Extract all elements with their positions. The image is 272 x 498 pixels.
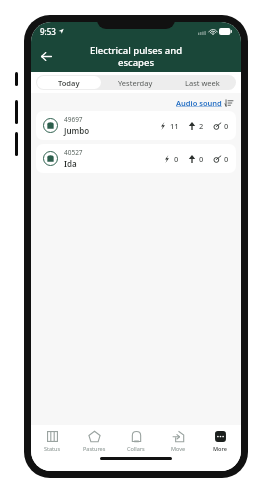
button[interactable]: Collars bbox=[115, 425, 157, 457]
staticText: Status bbox=[44, 445, 61, 452]
button[interactable]: Last week bbox=[170, 76, 235, 89]
button[interactable]: Pastures bbox=[73, 425, 115, 457]
button[interactable]: 40527 bbox=[36, 144, 236, 173]
button[interactable]: Today bbox=[37, 76, 101, 89]
staticText: 0 bbox=[224, 154, 229, 164]
staticText: 9:53 bbox=[40, 26, 56, 37]
staticText: 11 bbox=[170, 121, 179, 131]
staticText: Pastures bbox=[83, 445, 106, 452]
staticText: Move bbox=[171, 445, 186, 452]
staticText: 49697 bbox=[64, 115, 83, 124]
staticText: 0 bbox=[199, 154, 204, 164]
staticText: Electrical pulses and escapes bbox=[61, 44, 211, 69]
other: Sort bbox=[225, 99, 233, 107]
staticText: Ida bbox=[64, 158, 77, 169]
button[interactable]: 49697 bbox=[36, 111, 236, 140]
staticText: Audio sound bbox=[176, 98, 222, 108]
staticText: Last week bbox=[185, 78, 220, 88]
staticText: Yesterday bbox=[118, 78, 153, 88]
button[interactable]: Back bbox=[31, 41, 61, 71]
staticText: Jumbo bbox=[64, 125, 90, 136]
staticText: 0 bbox=[224, 121, 229, 131]
staticText: 40527 bbox=[64, 148, 83, 157]
staticText: 2 bbox=[199, 121, 204, 131]
staticText: Today bbox=[58, 78, 80, 88]
button[interactable]: Yesterday bbox=[103, 76, 168, 89]
staticText: 0 bbox=[174, 154, 179, 164]
button[interactable]: Move bbox=[157, 425, 199, 457]
staticText: Collars bbox=[127, 445, 145, 452]
button[interactable]: Audio sound bbox=[176, 98, 233, 108]
button[interactable]: More bbox=[199, 425, 241, 457]
button[interactable]: Status bbox=[31, 425, 73, 457]
staticText: More bbox=[213, 445, 227, 452]
